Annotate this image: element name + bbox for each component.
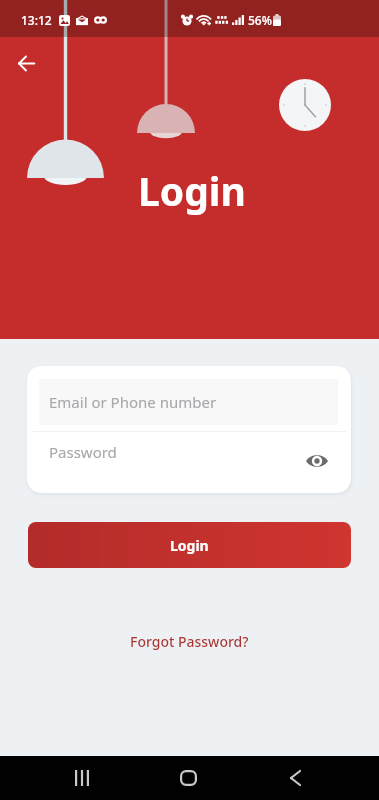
staticText: Login bbox=[170, 536, 209, 555]
button[interactable]: Login bbox=[28, 522, 351, 568]
button[interactable]: Home bbox=[158, 756, 218, 800]
button[interactable]: Recents bbox=[52, 756, 112, 800]
button[interactable]: Back bbox=[6, 43, 46, 83]
button[interactable]: Email or Phone number bbox=[39, 379, 338, 425]
staticText: 13:12 bbox=[21, 12, 52, 28]
button[interactable]: Back bbox=[265, 756, 325, 800]
button[interactable]: Forgot Password? bbox=[122, 626, 257, 657]
staticText: Email or Phone number bbox=[49, 392, 217, 412]
staticText: Password bbox=[49, 442, 117, 462]
staticText: Login bbox=[138, 164, 246, 217]
button[interactable]: Show password bbox=[300, 444, 334, 478]
staticText: Forgot Password? bbox=[130, 632, 249, 651]
button[interactable]: Password bbox=[33, 432, 346, 490]
staticText: 56% bbox=[248, 12, 272, 28]
